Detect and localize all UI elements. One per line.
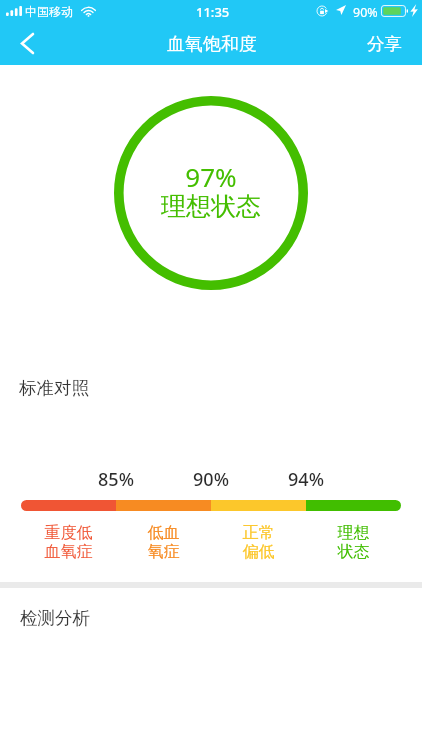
staticText: 90% <box>181 467 241 492</box>
staticText: 85% <box>86 467 146 492</box>
staticText: 94% <box>276 467 336 492</box>
button[interactable]: Back <box>0 22 52 65</box>
staticText: 分享 <box>367 33 402 55</box>
staticText: 中国移动 <box>25 4 73 19</box>
staticText: 血氧饱和度 <box>167 33 257 56</box>
staticText: 低血 氧症 <box>116 523 211 561</box>
staticText: 97% <box>114 159 308 194</box>
staticText: 理想状态 <box>114 191 308 222</box>
staticText: 理想 状态 <box>306 523 401 561</box>
staticText: 90% <box>353 4 378 21</box>
staticText: 检测分析 <box>20 607 90 629</box>
staticText: 正常 偏低 <box>211 523 306 561</box>
staticText: 重度低 血氧症 <box>21 523 116 561</box>
button[interactable]: 分享 <box>367 33 402 55</box>
staticText: 11:35 <box>196 3 230 21</box>
staticText: 标准对照 <box>19 377 89 399</box>
